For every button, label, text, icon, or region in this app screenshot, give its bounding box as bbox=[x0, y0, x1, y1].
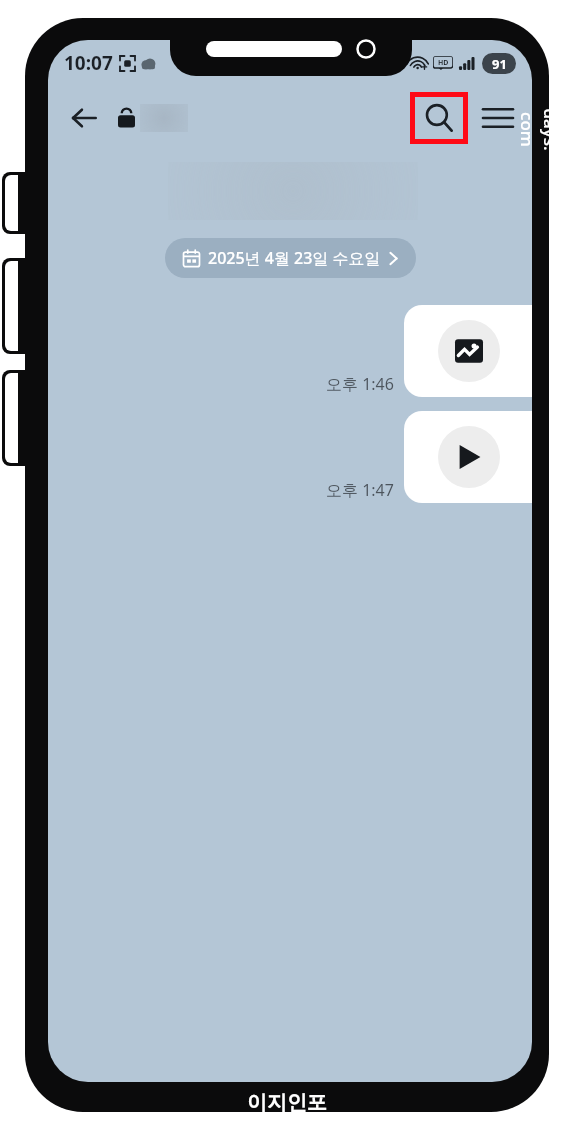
staticText: 91 bbox=[492, 55, 507, 73]
button[interactable]: Image message bbox=[404, 305, 532, 397]
staticText: 이지인포 bbox=[247, 1090, 327, 1115]
staticText: 2025년 4월 23일 수요일 bbox=[208, 247, 381, 269]
button[interactable]: Menu bbox=[476, 96, 520, 140]
button[interactable]: 2025년 4월 23일 수요일 bbox=[165, 238, 416, 278]
staticText: ei.reidays.com bbox=[515, 107, 574, 151]
button[interactable]: Back bbox=[62, 96, 106, 140]
staticText: 오후 1:46 bbox=[326, 373, 394, 395]
button[interactable]: Search bbox=[410, 92, 468, 144]
staticText: HD bbox=[438, 58, 449, 68]
button[interactable]: Video message bbox=[404, 411, 532, 503]
staticText: 오후 1:47 bbox=[326, 479, 394, 501]
staticText: 10:07 bbox=[64, 50, 113, 76]
